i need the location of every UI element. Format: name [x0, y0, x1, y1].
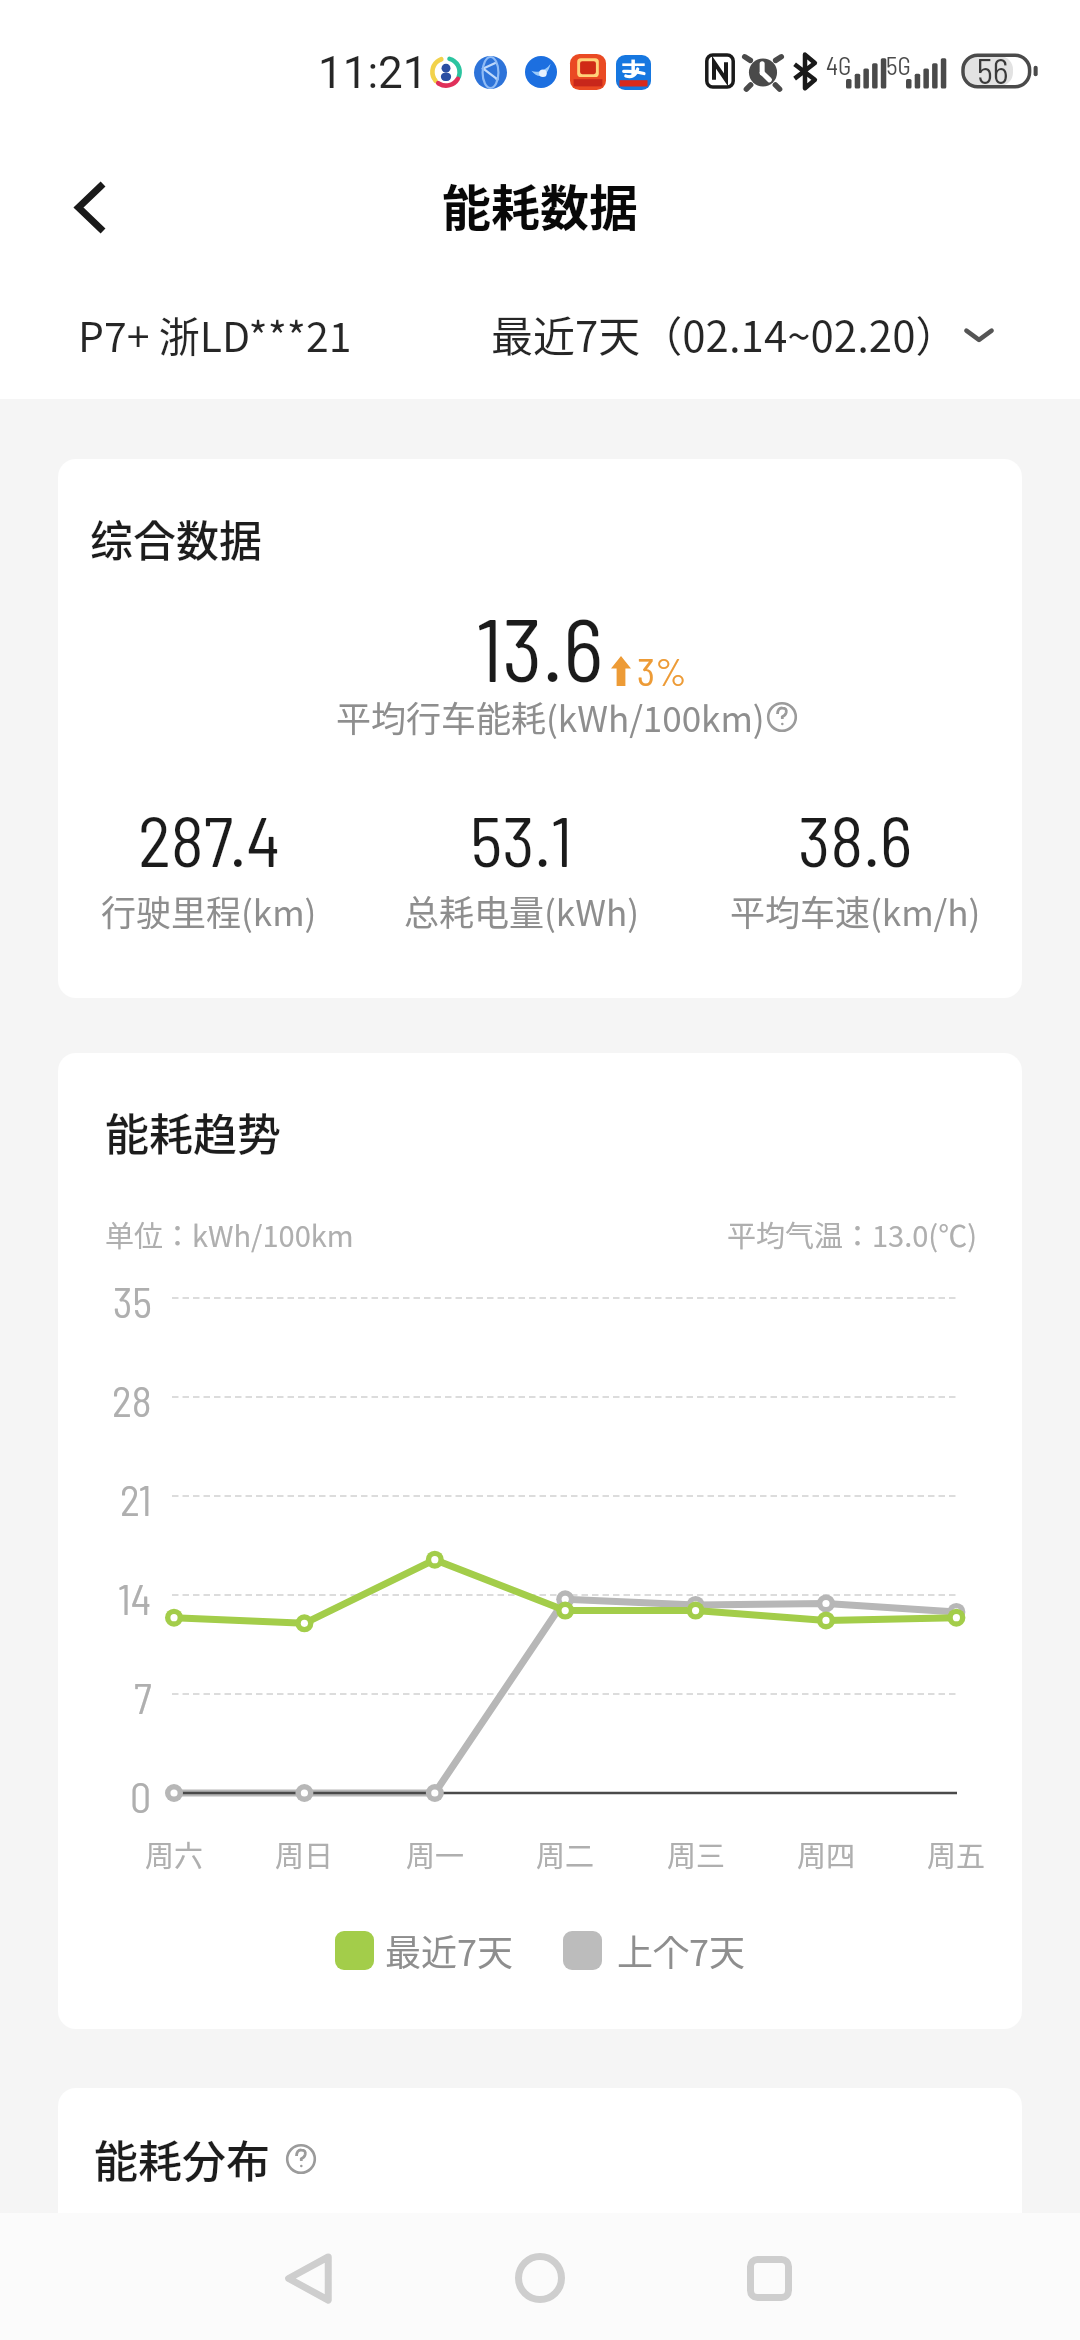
staticText: 平均车速(km/h) [730, 885, 981, 936]
staticText: 11:21 [318, 47, 428, 99]
staticText: 能耗趋势 [105, 1100, 281, 1164]
staticText: 周二 [536, 1833, 595, 1875]
button[interactable]: Home [490, 2225, 590, 2331]
button[interactable]: Help [767, 702, 797, 732]
staticText: 35 [113, 1276, 152, 1326]
staticText: 总耗电量(kWh) [404, 885, 639, 936]
staticText: 综合数据 [90, 507, 262, 569]
staticText: 4G [826, 50, 852, 80]
staticText: 周六 [145, 1833, 204, 1875]
button[interactable]: Recents [719, 2225, 819, 2331]
staticText: 3% [637, 647, 687, 694]
staticText: 0 [130, 1771, 152, 1821]
staticText: 能耗分布 [94, 2127, 270, 2191]
staticText: 周一 [406, 1833, 465, 1875]
staticText: 周日 [275, 1833, 334, 1875]
staticText: 平均气温：13.0(℃) [727, 1213, 977, 1255]
staticText: 周四 [797, 1833, 856, 1875]
staticText: 5G [886, 50, 911, 80]
staticText: 最近7天（02.14~02.20） [491, 303, 958, 364]
button[interactable]: Back [54, 172, 124, 242]
button[interactable]: Back [258, 2225, 358, 2331]
staticText: 53.1 [470, 797, 573, 881]
staticText: 平均行车能耗(kWh/100km) [336, 691, 765, 742]
staticText: 行驶里程(km) [101, 885, 317, 936]
staticText: 上个7天 [617, 1924, 745, 1976]
staticText: 287.4 [138, 797, 280, 881]
button[interactable]: 最近7天（02.14~02.20） [491, 303, 1000, 364]
staticText: 14 [118, 1573, 152, 1623]
button[interactable]: Help [286, 2144, 316, 2174]
staticText: 38.6 [798, 797, 913, 881]
staticText: 28 [112, 1375, 152, 1425]
staticText: 最近7天 [385, 1924, 513, 1976]
staticText: P7+ 浙LD***21 [78, 304, 352, 363]
staticText: 21 [120, 1474, 152, 1524]
staticText: 7 [134, 1672, 152, 1722]
staticText: 13.6 [476, 595, 604, 699]
staticText: 周五 [927, 1833, 986, 1875]
staticText: 56 [977, 50, 1009, 91]
staticText: 周三 [667, 1833, 726, 1875]
staticText: 能耗数据 [442, 169, 639, 240]
staticText: 单位：kWh/100km [105, 1213, 354, 1255]
